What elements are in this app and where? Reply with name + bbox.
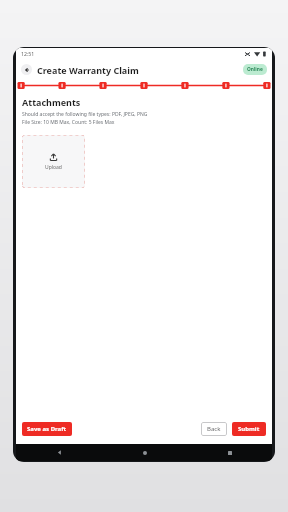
button[interactable]: Upload — [22, 135, 85, 188]
staticText: Online — [247, 66, 263, 73]
staticText: Attachments — [22, 96, 81, 108]
button[interactable]: Submit — [232, 422, 266, 436]
staticText: Create Warranty Claim — [37, 64, 139, 76]
staticText: File Size: 10 MB Max, Count: 5 Files Max — [22, 119, 115, 126]
button[interactable]: Recents — [187, 444, 272, 461]
button[interactable]: Back — [21, 64, 32, 75]
staticText: Should accept the following file types: … — [22, 111, 148, 118]
button[interactable]: Home — [102, 444, 187, 461]
staticText: Upload — [45, 164, 62, 171]
button[interactable]: Back — [201, 422, 227, 436]
button[interactable]: Save as Draft — [22, 422, 72, 436]
staticText: Submit — [238, 425, 260, 433]
staticText: Back — [207, 425, 221, 433]
button[interactable]: Online — [243, 64, 267, 75]
staticText: Save as Draft — [27, 425, 67, 433]
button[interactable]: Back — [16, 444, 102, 461]
staticText: 12:51 — [21, 50, 35, 57]
